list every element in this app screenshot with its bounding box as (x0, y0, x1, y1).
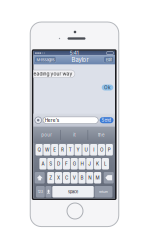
staticText: R (61, 147, 64, 152)
button[interactable]: W (43, 144, 50, 155)
button[interactable]: U (82, 144, 89, 155)
staticText: U (84, 147, 87, 152)
button[interactable]: C (63, 172, 70, 183)
staticText: A (41, 161, 44, 166)
staticText: G (73, 161, 76, 166)
staticText: Baylor (71, 56, 88, 63)
staticText: Here's (45, 117, 59, 123)
staticText: 5:41 (70, 50, 79, 56)
staticText: X (57, 175, 60, 180)
staticText: B (80, 175, 83, 180)
button[interactable]: the (88, 127, 115, 143)
staticText: Edit (106, 57, 112, 62)
button[interactable]: M (94, 172, 101, 183)
staticText: Send (102, 118, 112, 123)
staticText: O (100, 147, 103, 152)
button[interactable]: return (94, 186, 112, 197)
staticText: F (65, 161, 68, 166)
staticText: E (53, 147, 56, 152)
button[interactable]: D (55, 158, 62, 169)
button[interactable]: F (63, 158, 70, 169)
button[interactable]: O (98, 144, 105, 155)
staticText: J (88, 161, 91, 166)
button[interactable] (104, 172, 114, 183)
button[interactable] (45, 186, 52, 197)
button[interactable]: pour (33, 127, 60, 143)
button[interactable]: Y (74, 144, 82, 155)
button[interactable]: K (94, 158, 101, 169)
button[interactable]: Z (47, 172, 54, 183)
staticText: 123 (38, 190, 43, 194)
staticText: I (93, 147, 94, 152)
staticText: space (68, 189, 78, 194)
button[interactable] (35, 172, 45, 183)
staticText: T (69, 147, 72, 152)
button[interactable]: S (47, 158, 54, 169)
button[interactable]: I (90, 144, 97, 155)
button[interactable]: V (71, 172, 78, 183)
button[interactable]: A (39, 158, 47, 169)
staticText: N (88, 175, 91, 180)
button[interactable]: Send (100, 117, 113, 123)
button[interactable]: Edit (104, 57, 114, 63)
staticText: S (49, 161, 52, 166)
staticText: Z (49, 175, 52, 180)
staticText: Messages (36, 57, 54, 62)
button[interactable]: Attach photo (35, 117, 41, 123)
button[interactable]: N (86, 172, 93, 183)
button[interactable]: X (55, 172, 62, 183)
staticText: L (104, 161, 107, 166)
staticText: D (57, 161, 60, 166)
staticText: W (45, 147, 49, 152)
button[interactable]: B (78, 172, 86, 183)
staticText: the (98, 132, 105, 137)
staticText: return (99, 190, 108, 194)
button[interactable]: P (106, 144, 113, 155)
staticText: Ok (104, 85, 111, 90)
button[interactable]: Q (35, 144, 43, 155)
button[interactable]: 123 (36, 186, 45, 197)
button[interactable]: G (71, 158, 78, 169)
staticText: H (80, 161, 83, 166)
button[interactable]: J (86, 158, 93, 169)
button[interactable]: H (78, 158, 86, 169)
staticText: V (73, 175, 76, 180)
button[interactable]: L (102, 158, 109, 169)
staticText: Heading your way (29, 71, 72, 77)
button[interactable]: E (51, 144, 58, 155)
staticText: Y (77, 147, 80, 152)
button[interactable]: space (52, 186, 94, 197)
staticText: Q (38, 147, 41, 152)
button[interactable]: it (61, 127, 88, 143)
staticText: pour (41, 132, 52, 137)
button[interactable]: R (59, 144, 66, 155)
button[interactable]: T (67, 144, 74, 155)
staticText: it (73, 132, 75, 137)
staticText: M (96, 175, 100, 180)
staticText: C (65, 175, 68, 180)
button[interactable]: Messages (35, 57, 56, 63)
staticText: K (96, 161, 99, 166)
staticText: P (108, 147, 111, 152)
